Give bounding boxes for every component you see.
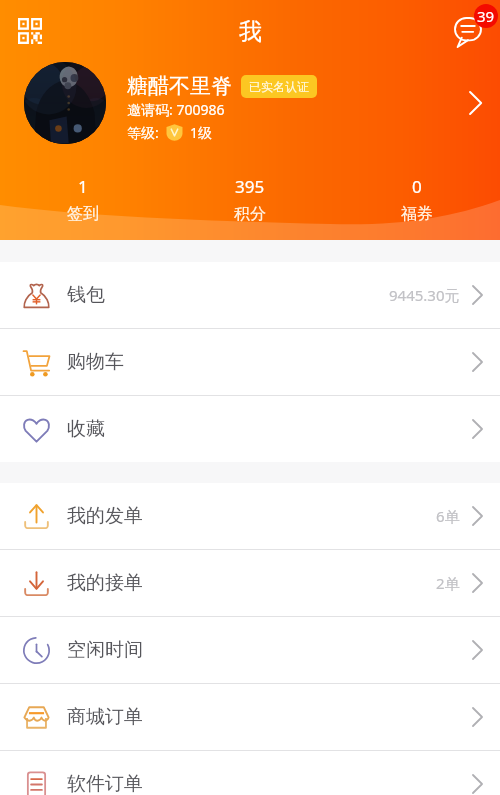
button[interactable]: 1 bbox=[0, 175, 166, 224]
staticText: 软件订单 bbox=[67, 772, 143, 795]
button[interactable]: 0 bbox=[333, 175, 500, 224]
staticText: 39 bbox=[477, 6, 495, 26]
button[interactable]: 糖醋不里脊 bbox=[0, 58, 500, 148]
button[interactable]: Scan QR code bbox=[8, 9, 52, 53]
staticText: 购物车 bbox=[67, 350, 124, 374]
button[interactable]: 商城订单 bbox=[0, 684, 500, 750]
staticText: 邀请码: 700986 bbox=[127, 100, 225, 119]
staticText: 1级 bbox=[190, 123, 213, 142]
staticText: 等级: bbox=[127, 123, 159, 142]
staticText: 我的发单 bbox=[67, 504, 143, 528]
staticText: 9445.30元 bbox=[389, 285, 460, 305]
button[interactable]: 我的接单 bbox=[0, 550, 500, 616]
button[interactable]: 我的发单 bbox=[0, 483, 500, 549]
staticText: 积分 bbox=[234, 204, 266, 224]
staticText: 我的接单 bbox=[67, 571, 143, 595]
staticText: 已实名认证 bbox=[249, 79, 309, 94]
staticText: 糖醋不里脊 bbox=[127, 73, 232, 99]
staticText: 2单 bbox=[436, 573, 460, 593]
button[interactable]: 软件订单 bbox=[0, 751, 500, 795]
staticText: 空闲时间 bbox=[67, 638, 143, 662]
button[interactable]: Messages bbox=[448, 0, 500, 52]
staticText: 签到 bbox=[67, 204, 99, 224]
staticText: 收藏 bbox=[67, 417, 105, 441]
staticText: 商城订单 bbox=[67, 705, 143, 729]
staticText: 我 bbox=[239, 17, 262, 46]
button[interactable]: 空闲时间 bbox=[0, 617, 500, 683]
button[interactable]: 395 bbox=[166, 175, 333, 224]
staticText: 6单 bbox=[436, 506, 460, 526]
staticText: 0 bbox=[412, 175, 422, 198]
button[interactable]: 收藏 bbox=[0, 396, 500, 462]
staticText: 395 bbox=[235, 175, 265, 198]
staticText: 1 bbox=[78, 175, 88, 198]
button[interactable]: 购物车 bbox=[0, 329, 500, 395]
button[interactable]: 钱包 bbox=[0, 262, 500, 328]
staticText: 钱包 bbox=[67, 283, 105, 307]
staticText: 福券 bbox=[401, 204, 433, 224]
